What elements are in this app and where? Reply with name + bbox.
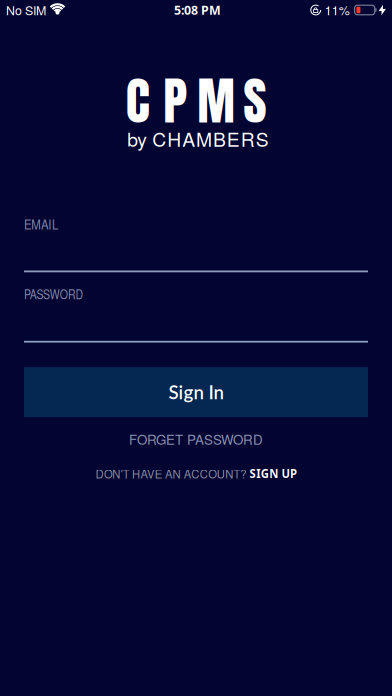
staticText: No SIM [6,1,46,19]
staticText: C [126,63,150,139]
staticText: by [127,125,147,152]
staticText: S [243,63,266,139]
staticText: B [213,125,226,152]
button[interactable]: DON'T HAVE AN ACCOUNT? [89,468,303,479]
button[interactable]: Sign In [24,367,368,417]
staticText: S [256,125,269,152]
button[interactable]: FORGET PASSWORD [129,433,263,445]
staticText: H [167,125,181,152]
staticText: M [197,63,235,139]
staticText: C [152,125,166,152]
staticText: 11% [325,1,350,19]
staticText: E [227,125,240,152]
staticText: FORGET PASSWORD [129,430,263,449]
staticText: 5:08 PM [174,2,221,18]
staticText: PASSWORD [24,285,95,303]
staticText: A [182,125,195,152]
staticText: R [241,125,255,152]
staticText: M [196,125,212,152]
staticText: EMAIL [24,215,62,233]
staticText: DON'T HAVE AN ACCOUNT? [89,465,250,482]
staticText: Sign In [168,381,223,403]
staticText: SIGN UP [253,465,303,481]
staticText: P [163,63,187,139]
